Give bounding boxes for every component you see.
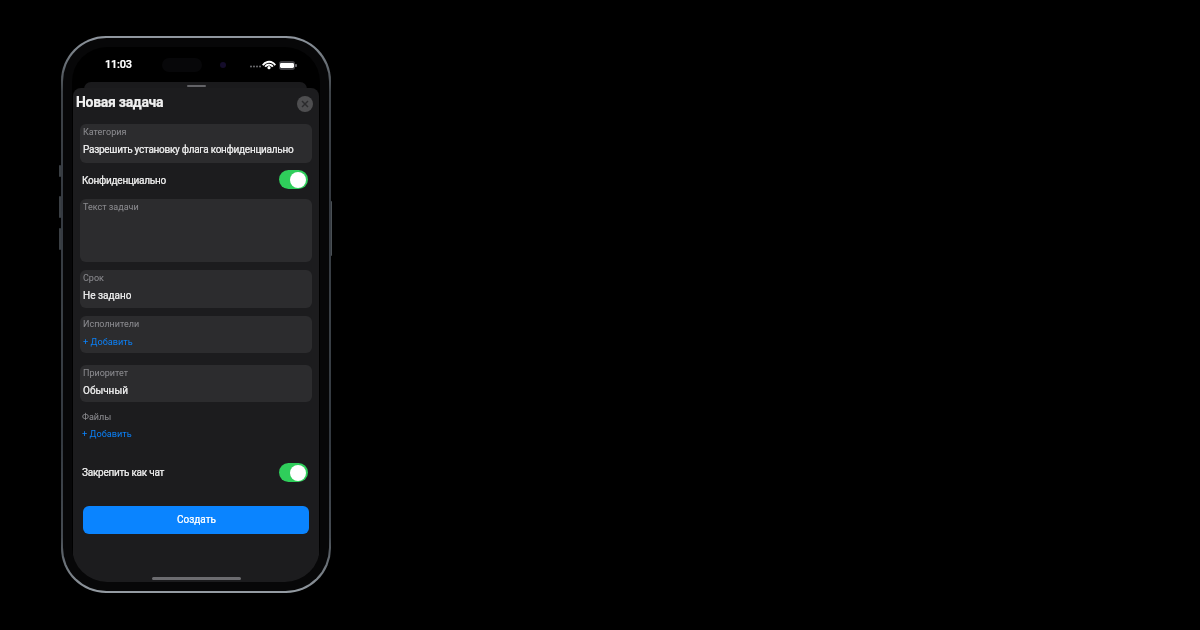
button[interactable]: Создать: [83, 506, 309, 534]
staticText: Приоритет: [83, 368, 129, 379]
button[interactable]: Текст задачи: [80, 199, 312, 262]
staticText: Закрепить как чат: [82, 467, 165, 479]
staticText: Категория: [83, 127, 127, 138]
staticText: Текст задачи: [83, 202, 139, 213]
staticText: Создать: [177, 514, 216, 526]
button[interactable]: Pin as chat toggle, on: [279, 463, 308, 482]
button[interactable]: [80, 463, 308, 482]
staticText: Файлы: [82, 412, 112, 423]
staticText: Срок: [83, 273, 104, 284]
button[interactable]: [80, 170, 308, 189]
staticText: + Добавить: [83, 336, 133, 347]
staticText: + Добавить: [82, 428, 132, 439]
button[interactable]: Close: [297, 96, 313, 112]
button[interactable]: Приоритет: [80, 365, 312, 402]
staticText: Конфиденциально: [82, 175, 166, 187]
staticText: Исполнители: [83, 319, 140, 330]
button[interactable]: Категория: [80, 124, 312, 163]
button[interactable]: Исполнители: [80, 316, 312, 353]
staticText: Новая задача: [76, 94, 164, 110]
staticText: Обычный: [83, 385, 128, 397]
staticText: Разрешить установку флага конфиденциальн…: [83, 144, 294, 156]
button[interactable]: Confidential toggle, on: [279, 170, 308, 189]
staticText: Не задано: [83, 290, 132, 302]
staticText: 11:03: [105, 58, 132, 71]
button[interactable]: + Добавить: [82, 426, 132, 441]
button[interactable]: Срок: [80, 270, 312, 308]
